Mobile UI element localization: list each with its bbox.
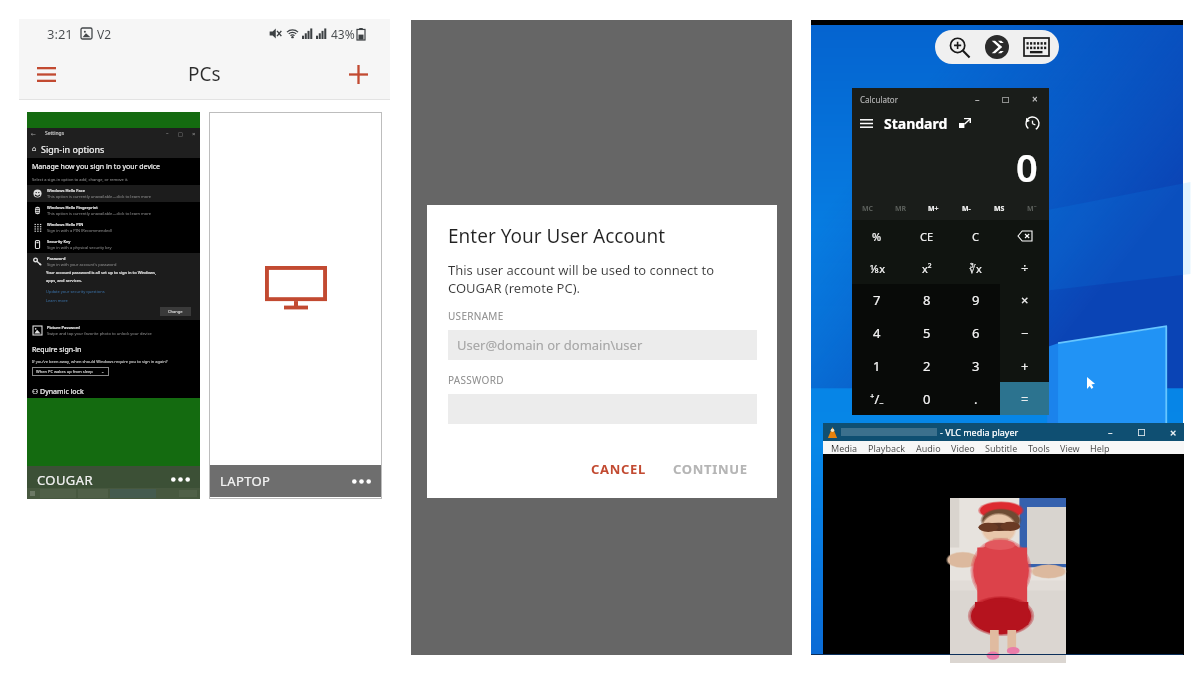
staticText: – (1108, 426, 1113, 438)
button[interactable]: × (1000, 284, 1049, 316)
staticText: x² (922, 261, 932, 276)
button[interactable]: CONTINUE (664, 454, 757, 484)
staticText: Mˇ (1027, 204, 1038, 214)
button[interactable]: Playback (863, 442, 911, 454)
staticText: Select a sign-in option to add, change, … (32, 177, 129, 182)
button[interactable]: More options for LAPTOP (345, 465, 377, 497)
staticText: V2 (97, 26, 112, 42)
staticText: MR (895, 204, 907, 214)
staticText: MC (862, 204, 874, 214)
button[interactable]: M+ (917, 198, 950, 220)
button[interactable]: M- (950, 198, 983, 220)
staticText: Media (831, 442, 858, 454)
staticText: C (972, 229, 979, 244)
button[interactable]: More options for COUGAR (164, 466, 196, 493)
button[interactable]: Zoom (944, 32, 974, 62)
button[interactable]: Open navigation menu (22, 50, 70, 98)
button[interactable]: x² (902, 252, 951, 284)
staticText: 43% (331, 26, 355, 42)
button[interactable]: Remote Desktop session (982, 32, 1012, 62)
staticText: Learn more (46, 298, 68, 303)
button[interactable]: 9 (951, 284, 1000, 316)
button[interactable]: 2 (902, 349, 951, 382)
button[interactable]: ∛x (951, 252, 1000, 284)
staticText: 1 (873, 357, 881, 375)
staticText: Manage how you sign in to your device (32, 162, 161, 172)
button[interactable]: % (852, 220, 902, 252)
button[interactable]: Change (160, 307, 191, 316)
button[interactable]: ⁺/₋ (852, 382, 902, 415)
staticText: Change (168, 309, 183, 314)
button[interactable]: MS (983, 198, 1016, 220)
button[interactable]: Help (1085, 442, 1115, 454)
button[interactable]: Video (946, 442, 980, 454)
button[interactable]: Media (826, 442, 863, 454)
staticText: Subtitle (985, 442, 1018, 454)
staticText: If you've been away, when should Windows… (32, 359, 168, 364)
staticText: 3 (972, 357, 980, 375)
staticText: − (1021, 324, 1029, 342)
button[interactable]: − (1000, 316, 1049, 349)
button[interactable]: ÷ (1000, 252, 1049, 284)
staticText: Password (47, 256, 66, 261)
button[interactable]: ⅛x (852, 252, 902, 284)
staticText: □ (178, 131, 183, 137)
button[interactable]: 4 (852, 316, 902, 349)
staticText: ⚇ Dynamic lock (32, 387, 84, 397)
button[interactable]: 5 (902, 316, 951, 349)
button[interactable]: View (1055, 442, 1085, 454)
staticText: This option is currently unavailable—cli… (47, 211, 152, 216)
staticText: Audio (916, 442, 941, 454)
button[interactable]: + (1000, 349, 1049, 382)
staticText: LAPTOP (220, 472, 271, 490)
staticText: CANCEL (591, 460, 647, 478)
staticText: USERNAME (448, 309, 504, 323)
staticText: % (872, 229, 882, 244)
button[interactable]: ← (27, 112, 200, 499)
button[interactable]: Subtitle (980, 442, 1023, 454)
staticText: Swipe and tap your favorite photo to unl… (47, 331, 152, 336)
button[interactable]: 1 (852, 349, 902, 382)
button[interactable]: Audio (911, 442, 946, 454)
staticText: ÷ (1021, 259, 1029, 277)
staticText: PASSWORD (448, 373, 504, 387)
staticText: 6 (972, 324, 980, 342)
staticText: 3:21 (47, 25, 73, 43)
staticText: Picture Password (47, 325, 80, 330)
button[interactable]: 6 (951, 316, 1000, 349)
button[interactable]: Mˇ (1016, 198, 1049, 220)
staticText: ∛x (969, 261, 982, 276)
button[interactable]: Add PC (336, 52, 380, 96)
staticText: View (1060, 442, 1080, 454)
button[interactable]: CANCEL (582, 454, 656, 484)
staticText: Help (1090, 442, 1110, 454)
button[interactable] (1000, 220, 1049, 252)
button[interactable]: LAPTOP (209, 112, 382, 499)
button[interactable]: CE (902, 220, 951, 252)
button[interactable]: MR (884, 198, 917, 220)
staticText: MS (994, 204, 1005, 214)
staticText: CE (920, 229, 934, 244)
staticText: □ (1002, 95, 1010, 104)
staticText: × (1021, 291, 1029, 309)
staticText: Settings (45, 130, 65, 137)
button[interactable]: MC (852, 198, 884, 220)
button[interactable]: 7 (852, 284, 902, 316)
staticText: Sign in with a physical security key (47, 245, 112, 250)
staticText: 5 (923, 324, 931, 342)
button[interactable]: 3 (951, 349, 1000, 382)
staticText: . (974, 390, 978, 408)
staticText: Sign in with your account's password (47, 262, 117, 267)
button[interactable]: . (951, 382, 1000, 415)
staticText: Tools (1028, 442, 1050, 454)
button[interactable]: = (1000, 382, 1049, 415)
button[interactable]: Keyboard (1021, 32, 1051, 62)
button[interactable]: 0 (902, 382, 951, 415)
staticText: COUGAR (37, 471, 93, 489)
button[interactable]: 8 (902, 284, 951, 316)
staticText: When PC wakes up from sleep ⌄ (36, 369, 105, 374)
button[interactable]: Tools (1023, 442, 1055, 454)
staticText: M- (962, 204, 971, 214)
staticText: User@domain or domain\user (457, 336, 643, 354)
button[interactable]: C (951, 220, 1000, 252)
